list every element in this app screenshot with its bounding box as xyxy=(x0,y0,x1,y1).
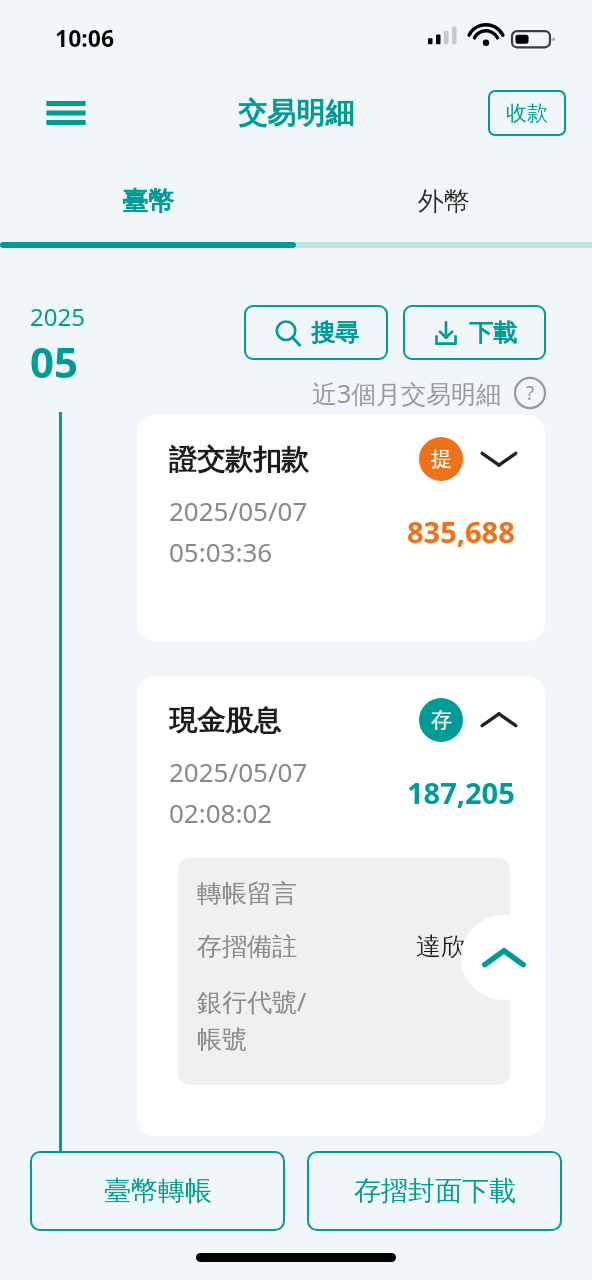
button[interactable]: 搜尋 xyxy=(244,305,388,360)
staticText: 外幣 xyxy=(418,185,470,218)
staticText: 臺幣轉帳 xyxy=(104,1174,212,1208)
staticText: 證交款扣款 xyxy=(169,442,419,477)
staticText: 搜尋 xyxy=(311,318,359,348)
staticText: 達欣工 xyxy=(416,931,491,962)
staticText: 臺幣 xyxy=(122,185,174,218)
button[interactable]: 臺幣 xyxy=(0,170,296,232)
staticText: 銀行代號/ xyxy=(197,984,307,1018)
button[interactable]: 外幣 xyxy=(296,170,592,232)
staticText: 存 xyxy=(431,707,452,733)
button[interactable]: 臺幣轉帳 xyxy=(30,1151,285,1231)
other: Expand xyxy=(479,446,519,472)
staticText: 2025/05/07 xyxy=(169,754,308,789)
staticText: 05 xyxy=(30,333,79,390)
staticText: 下載 xyxy=(469,318,517,348)
staticText: 02:08:02 xyxy=(169,795,273,830)
other: Collapse xyxy=(479,707,519,733)
staticText: ? xyxy=(526,380,535,406)
staticText: 交易明細 xyxy=(238,95,354,132)
staticText: 187,205 xyxy=(407,773,515,812)
staticText: 近3個月交易明細 xyxy=(312,376,502,410)
button[interactable]: 存摺封面下載 xyxy=(307,1151,562,1231)
staticText: 2025/05/07 xyxy=(169,493,308,528)
button[interactable]: 近3個月交易明細 xyxy=(312,376,546,410)
staticText: 05:03:36 xyxy=(169,534,273,569)
button[interactable]: 證交款扣款 xyxy=(137,415,545,641)
staticText: 現金股息 xyxy=(169,703,419,738)
staticText: 835,688 xyxy=(407,512,515,551)
button[interactable]: 下載 xyxy=(403,305,546,360)
staticText: 收款 xyxy=(506,100,548,126)
staticText: 存摺封面下載 xyxy=(354,1174,516,1208)
staticText: 帳號 xyxy=(197,1024,247,1055)
button[interactable]: Menu xyxy=(42,89,90,137)
other: Help xyxy=(514,377,546,409)
staticText: 提 xyxy=(431,446,452,472)
staticText: 10:06 xyxy=(55,22,115,53)
button[interactable]: Scroll to top xyxy=(461,915,546,1000)
staticText: 轉帳留言 xyxy=(197,878,297,909)
button[interactable]: 收款 xyxy=(488,90,566,136)
staticText: 存摺備註 xyxy=(197,931,297,962)
staticText: 2025 xyxy=(30,300,85,333)
button[interactable]: 現金股息 xyxy=(137,676,545,1136)
